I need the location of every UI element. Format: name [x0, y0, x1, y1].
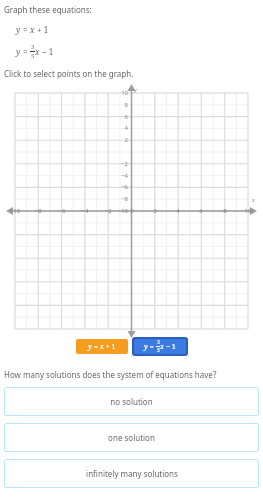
staticText: x — [252, 197, 255, 204]
staticText: 6 — [112, 113, 128, 121]
staticText: = — [92, 342, 100, 352]
staticText: −4 — [77, 207, 93, 215]
staticText: − 1 — [40, 46, 54, 57]
staticText: 8 — [112, 101, 128, 109]
staticText: one solution — [108, 432, 155, 443]
staticText: Click to select points on the graph. — [4, 68, 134, 79]
staticText: + 1 — [35, 24, 49, 35]
staticText: 8 — [217, 207, 233, 215]
button[interactable]: one solution — [4, 423, 259, 452]
staticText: x — [35, 46, 40, 57]
staticText: x — [100, 342, 104, 352]
staticText: −10 — [112, 207, 128, 215]
staticText: −10 — [7, 207, 23, 215]
staticText: −4 — [112, 172, 128, 180]
staticText: −8 — [112, 195, 128, 203]
button[interactable]: y — [76, 339, 128, 354]
staticText: − 1 — [164, 342, 176, 352]
staticText: −2 — [112, 160, 128, 168]
staticText: y — [134, 87, 137, 94]
staticText: Graph these equations: — [4, 4, 92, 15]
button[interactable]: no solution — [4, 387, 259, 416]
staticText: 0 — [124, 207, 140, 215]
staticText: −8 — [30, 207, 46, 215]
staticText: = — [21, 24, 30, 35]
staticText: no solution — [110, 396, 153, 407]
staticText: 4 — [170, 207, 186, 215]
staticText: 3 — [157, 339, 160, 346]
staticText: = — [21, 46, 30, 57]
staticText: + 1 — [104, 342, 116, 352]
button[interactable]: y — [134, 339, 186, 354]
staticText: y — [88, 342, 92, 352]
staticText: 5 — [31, 52, 35, 60]
staticText: x — [160, 342, 164, 352]
staticText: −6 — [112, 183, 128, 191]
staticText: y — [16, 46, 21, 57]
staticText: y — [16, 24, 21, 35]
staticText: = — [148, 342, 156, 352]
staticText: infinitely many solutions — [86, 468, 178, 479]
button[interactable]: infinitely many solutions — [4, 459, 259, 488]
staticText: 3 — [31, 43, 35, 51]
staticText: 4 — [112, 124, 128, 132]
staticText: 10 — [112, 89, 128, 97]
button[interactable]: Coordinate plane, tap to plot a point — [0, 85, 263, 337]
staticText: How many solutions does the system of eq… — [4, 369, 217, 380]
staticText: −2 — [100, 207, 116, 215]
staticText: 10 — [240, 207, 256, 215]
staticText: y — [144, 342, 148, 352]
staticText: x — [30, 24, 35, 35]
staticText: −6 — [54, 207, 70, 215]
staticText: 5 — [157, 347, 160, 354]
staticText: 2 — [147, 207, 163, 215]
staticText: 2 — [112, 136, 128, 144]
staticText: 6 — [193, 207, 209, 215]
